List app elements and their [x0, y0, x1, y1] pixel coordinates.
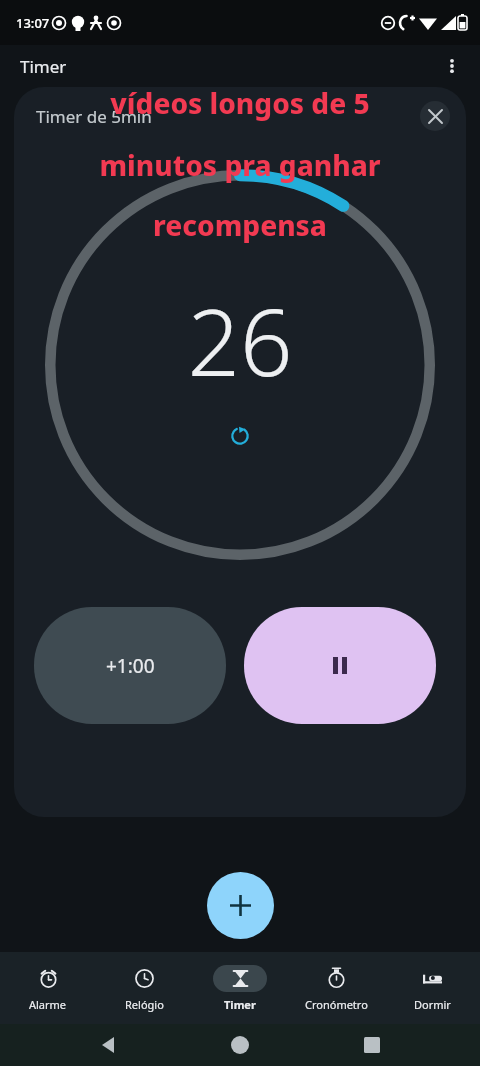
- staticText: Timer: [20, 55, 67, 78]
- staticText: +1:00: [106, 653, 155, 679]
- button[interactable]: Reset timer: [223, 419, 257, 453]
- button[interactable]: Dormir: [384, 952, 480, 1024]
- staticText: vídeos longos de 5: [0, 84, 480, 122]
- staticText: Cronómetro: [305, 997, 368, 1012]
- button[interactable]: Alarme: [0, 952, 96, 1024]
- staticText: Relógio: [125, 997, 164, 1012]
- button[interactable]: Delete timer: [420, 101, 450, 131]
- button[interactable]: Relógio: [96, 952, 192, 1024]
- button[interactable]: +1:00: [34, 607, 226, 724]
- staticText: 13:07: [16, 14, 50, 32]
- staticText: Alarme: [29, 997, 67, 1012]
- staticText: 26: [187, 278, 293, 403]
- staticText: Timer de 5min: [36, 105, 152, 128]
- button[interactable]: Pause: [244, 607, 436, 724]
- staticText: Timer: [224, 997, 256, 1012]
- staticText: Dormir: [414, 997, 451, 1012]
- button[interactable]: Add timer: [207, 872, 274, 939]
- staticText: minutos pra ganhar: [0, 146, 480, 184]
- button[interactable]: More options: [432, 46, 472, 86]
- button[interactable]: Timer: [192, 952, 288, 1024]
- button[interactable]: Cronómetro: [288, 952, 384, 1024]
- staticText: recompensa: [0, 206, 480, 244]
